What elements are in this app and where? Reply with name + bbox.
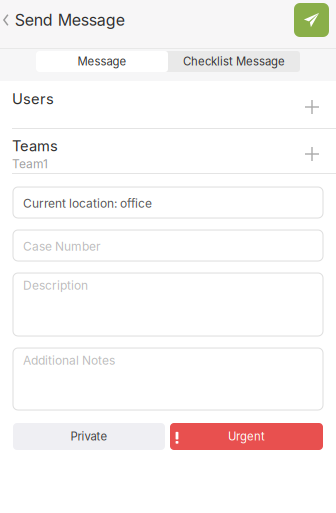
button[interactable]: Users: [0, 81, 336, 128]
button[interactable]: Private: [13, 423, 165, 450]
staticText: Message: [77, 55, 126, 68]
button[interactable]: Message: [36, 51, 168, 72]
staticText: Private: [70, 430, 107, 443]
staticText: Description: [23, 278, 88, 292]
button[interactable]: Send: [294, 3, 329, 37]
button[interactable]: Urgent: [170, 423, 323, 450]
staticText: Team1: [12, 157, 48, 171]
staticText: Checklist Message: [183, 55, 285, 68]
button[interactable]: Teams: [0, 129, 336, 173]
staticText: Send Message: [15, 10, 125, 30]
button[interactable]: Back: [0, 0, 135, 40]
staticText: Users: [12, 90, 54, 108]
button[interactable]: Checklist Message: [168, 51, 300, 72]
staticText: Current location: office: [23, 196, 152, 210]
staticText: Urgent: [228, 430, 265, 443]
staticText: Additional Notes: [23, 353, 115, 367]
staticText: Teams: [12, 137, 58, 155]
staticText: Case Number: [23, 239, 101, 253]
